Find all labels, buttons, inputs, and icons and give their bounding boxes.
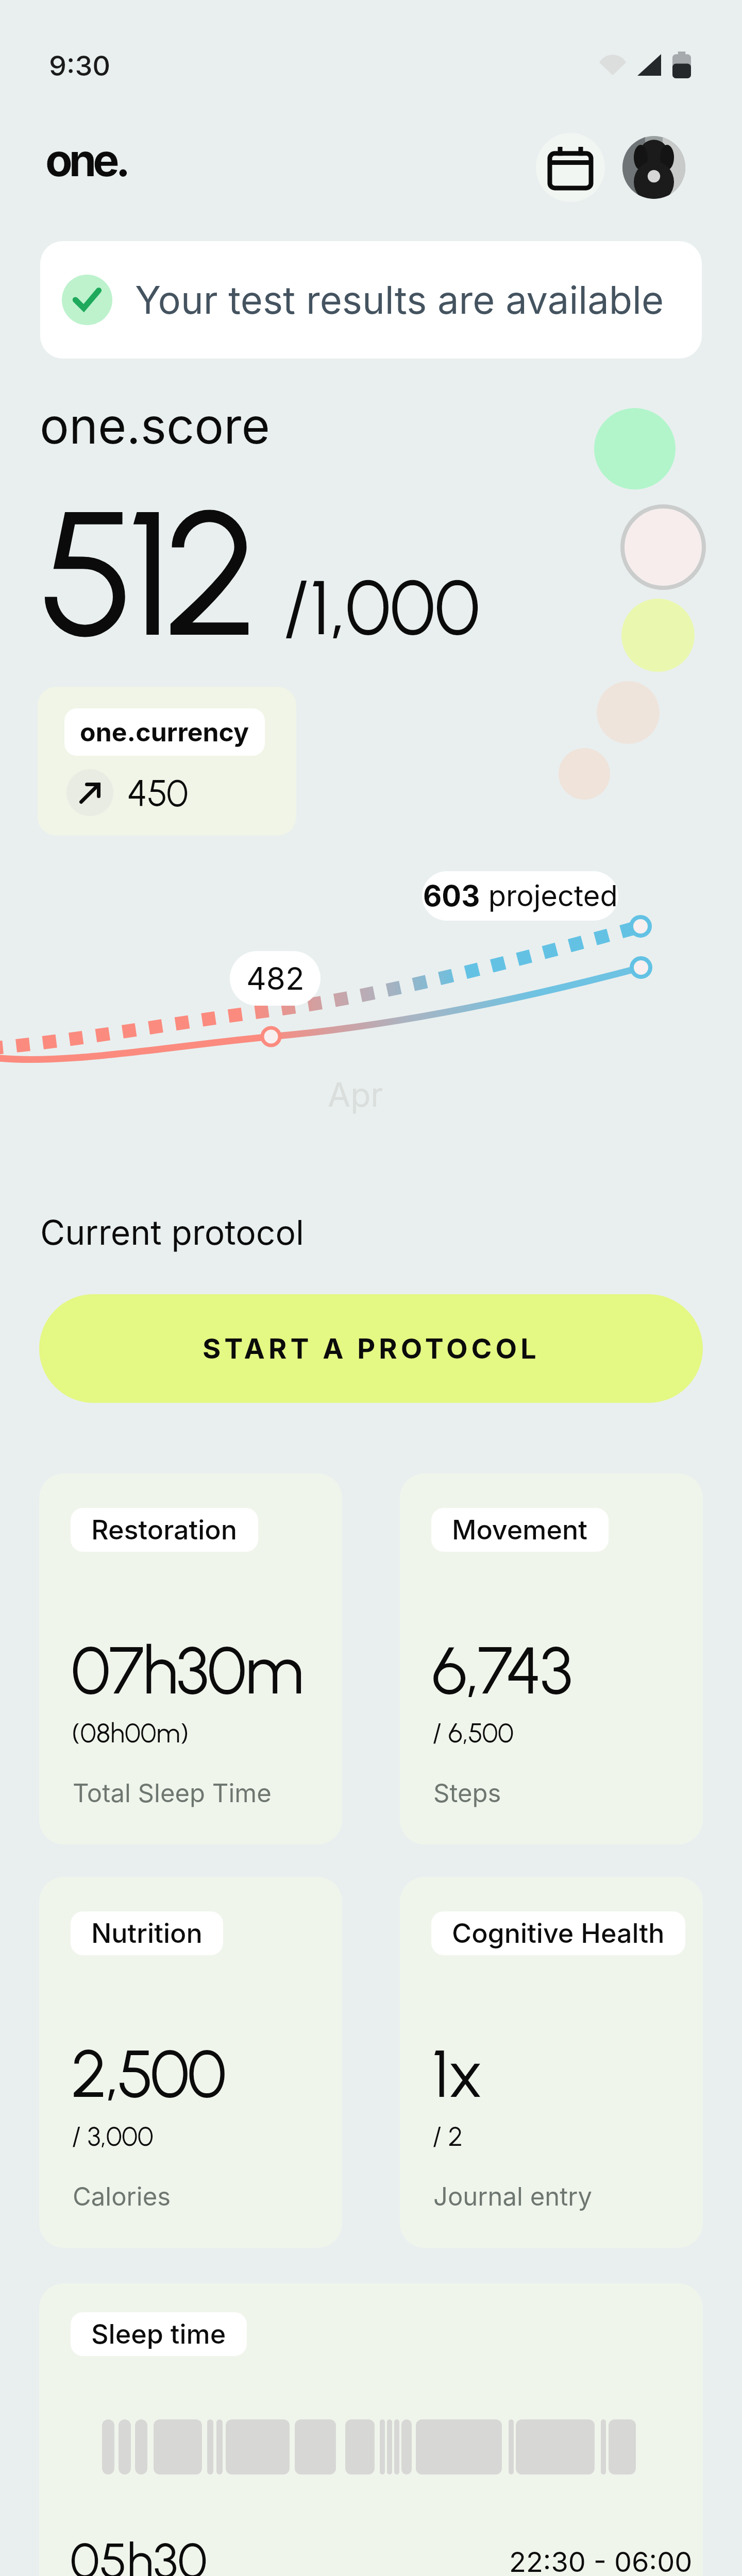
staticText: projected	[480, 878, 618, 913]
button[interactable]: Movement	[400, 1473, 703, 1844]
staticText: 450	[127, 771, 189, 815]
staticText: Total Sleep Time	[73, 1778, 272, 1808]
button[interactable]: Calendar	[536, 133, 605, 202]
staticText: 482	[246, 960, 305, 997]
staticText: Calories	[73, 2181, 171, 2212]
staticText: Sleep time	[91, 2318, 226, 2350]
staticText: 603	[423, 878, 480, 913]
staticText: / 3,000	[72, 2121, 154, 2153]
staticText: Cognitive Health	[452, 1917, 665, 1950]
staticText: / 6,500	[432, 1717, 514, 1749]
staticText: Movement	[452, 1514, 588, 1546]
staticText: Current protocol	[40, 1212, 305, 1253]
staticText: one.	[45, 133, 127, 187]
staticText: Restoration	[91, 1514, 238, 1546]
button[interactable]: Nutrition	[39, 1877, 342, 2248]
staticText: 512	[39, 468, 250, 679]
button[interactable]: one.currency	[38, 687, 296, 836]
button[interactable]: Sleep time	[39, 2283, 703, 2576]
staticText: 22:30 - 06:00	[509, 2545, 693, 2576]
staticText: Steps	[433, 1778, 501, 1808]
staticText: START A PROTOCOL	[203, 1332, 540, 1365]
button[interactable]: Your test results are available	[40, 241, 702, 359]
button[interactable]: Profile	[622, 136, 685, 199]
staticText: 9:30	[49, 49, 111, 82]
button[interactable]: START A PROTOCOL	[39, 1294, 703, 1403]
staticText: Your test results are available	[135, 277, 664, 323]
staticText: one.score	[40, 396, 270, 455]
staticText: 1x	[432, 2034, 482, 2113]
staticText: one.currency	[80, 717, 249, 748]
staticText: / 2	[432, 2121, 463, 2153]
button[interactable]: Restoration	[39, 1473, 342, 1844]
staticText: Nutrition	[91, 1917, 203, 1950]
staticText: Apr	[328, 1075, 383, 1114]
staticText: (08h00m)	[72, 1717, 189, 1749]
staticText: 6,743	[432, 1631, 571, 1710]
staticText: Journal entry	[433, 2181, 592, 2212]
button[interactable]: Cognitive Health	[400, 1877, 703, 2248]
staticText: 2,500	[71, 2034, 225, 2113]
staticText: 07h30m	[71, 1631, 302, 1710]
staticText: /1,000	[283, 562, 480, 653]
staticText: 05h30	[70, 2531, 208, 2576]
